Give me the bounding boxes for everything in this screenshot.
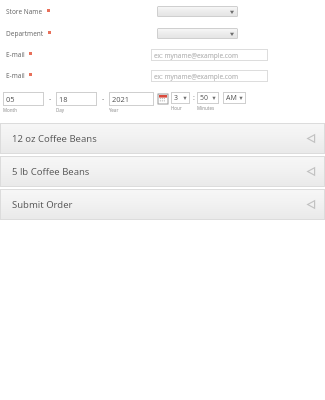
staticText: - [49,94,52,104]
button[interactable]: 12 oz Coffee Beans [0,123,325,154]
staticText: 50 [200,93,209,103]
staticText: 3 [174,93,179,103]
staticText: 12 oz Coffee Beans [12,132,97,145]
staticText: Month [3,107,17,113]
button[interactable]: 5 lb Coffee Beans [0,156,325,187]
button[interactable]: 50 [197,92,219,104]
staticText: 05 [6,94,15,104]
button[interactable]: 18 [56,92,97,106]
button[interactable] [157,6,238,17]
button[interactable]: Open calendar picker [158,94,168,104]
staticText: E-mail [6,71,25,80]
button[interactable]: 2021 [109,92,154,106]
button[interactable]: ex: myname@example.com [151,49,268,61]
staticText: AM [226,93,237,103]
staticText: Department [6,29,44,38]
staticText: 2021 [112,94,130,104]
staticText: - [102,94,105,104]
staticText: ex: myname@example.com [154,51,238,60]
button[interactable]: 3 [171,92,190,104]
button[interactable]: AM [223,92,246,104]
button[interactable]: 05 [3,92,44,106]
staticText: Year [109,107,119,113]
button[interactable]: ex: myname@example.com [151,70,268,82]
staticText: Minutes [197,105,215,111]
staticText: 18 [59,94,68,104]
button[interactable]: Submit Order [0,189,325,220]
staticText: Submit Order [12,198,73,211]
staticText: Store Name [6,7,43,16]
button[interactable] [157,28,238,39]
staticText: : [193,93,195,103]
staticText: Day [56,107,65,113]
staticText: E-mail [6,50,25,59]
staticText: ex: myname@example.com [154,72,238,81]
staticText: 5 lb Coffee Beans [12,165,90,178]
staticText: Hour [171,105,182,111]
